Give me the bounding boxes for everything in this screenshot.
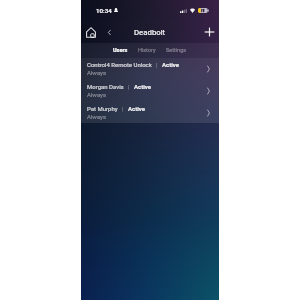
button[interactable]: Add bbox=[201, 24, 217, 40]
staticText: 10:34 bbox=[96, 7, 112, 14]
staticText: Always bbox=[87, 91, 107, 98]
staticText: | bbox=[128, 83, 130, 90]
staticText: Always bbox=[87, 69, 107, 76]
staticText: Morgan Davis bbox=[87, 83, 124, 90]
staticText: Control4 Remote Unlock bbox=[87, 61, 152, 68]
staticText: Always bbox=[87, 113, 107, 120]
button[interactable]: Pat Murphy bbox=[81, 102, 219, 123]
button[interactable]: Settings bbox=[163, 44, 190, 57]
staticText: Settings bbox=[166, 47, 187, 53]
staticText: Pat Murphy bbox=[87, 105, 118, 112]
staticText: Active bbox=[134, 83, 152, 90]
staticText: Users bbox=[113, 47, 128, 53]
button[interactable]: History bbox=[135, 44, 159, 57]
button[interactable]: Home bbox=[83, 24, 99, 40]
button[interactable]: Back bbox=[102, 25, 116, 39]
staticText: Deadbolt bbox=[134, 28, 166, 37]
button[interactable]: Control4 Remote Unlock bbox=[81, 58, 219, 79]
button[interactable]: Users bbox=[110, 44, 131, 57]
staticText: Active bbox=[128, 105, 146, 112]
staticText: Active bbox=[162, 61, 180, 68]
staticText: History bbox=[138, 47, 156, 53]
staticText: | bbox=[156, 61, 158, 68]
button[interactable]: Morgan Davis bbox=[81, 80, 219, 101]
staticText: | bbox=[122, 105, 124, 112]
